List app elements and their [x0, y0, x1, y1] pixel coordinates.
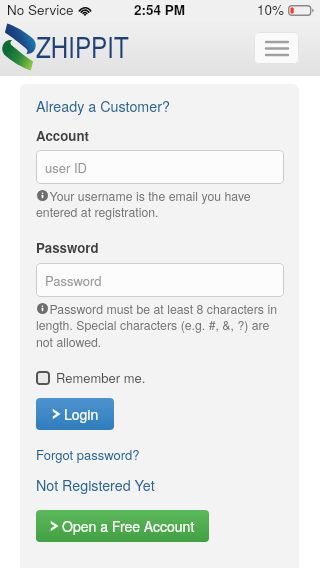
button[interactable]: Forgot password? — [36, 445, 140, 464]
button[interactable]: Menu — [254, 32, 299, 64]
button[interactable]: Already a Customer? — [36, 96, 170, 116]
staticText: user ID — [45, 158, 87, 177]
button[interactable]: Remember me. — [36, 368, 146, 387]
button[interactable]: Open a Free Account — [36, 510, 209, 542]
staticText: Password — [45, 271, 102, 290]
staticText: Remember me. — [56, 368, 146, 387]
button[interactable]: Not Registered Yet — [36, 475, 155, 495]
staticText: Password — [36, 238, 99, 257]
staticText: Account — [36, 126, 89, 145]
button[interactable]: user ID — [36, 150, 284, 184]
staticText: Open a Free Account — [62, 516, 195, 536]
staticText: Login — [64, 404, 99, 424]
button[interactable]: ZHIPPIT — [0, 22, 129, 72]
staticText: 2:54 PM — [134, 0, 186, 18]
button[interactable]: Password — [36, 263, 284, 297]
staticText: 10% — [257, 0, 285, 18]
staticText: ZHIPPIT — [36, 26, 129, 66]
staticText: *Your username is the email you have ent… — [36, 187, 284, 221]
staticText: *Password must be at least 8 characters … — [36, 300, 284, 351]
staticText: No Service — [7, 0, 74, 18]
button[interactable]: Login — [36, 398, 114, 430]
